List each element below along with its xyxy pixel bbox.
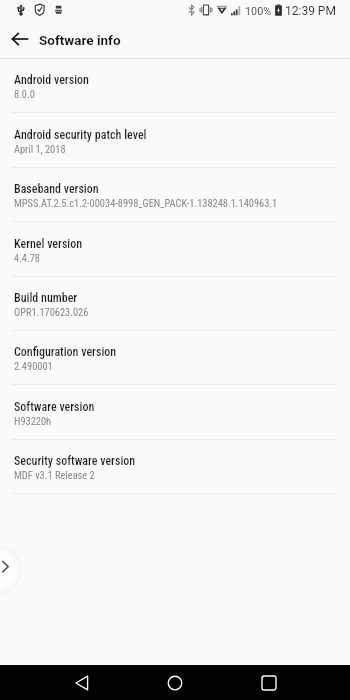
staticText: MPSS.AT.2.5.c1.2-00034-8998_GEN_PACK-1.1… [14, 197, 278, 209]
button[interactable]: Open edge panel [0, 544, 28, 596]
staticText: Android security patch level [14, 128, 147, 142]
button[interactable]: Navigate up [3, 22, 37, 56]
staticText: Configuration version [14, 345, 117, 359]
button[interactable]: Build number [0, 276, 350, 330]
staticText: 12:39 PM [285, 4, 336, 18]
button[interactable]: Back [58, 665, 105, 700]
staticText: April 1, 2018 [14, 143, 66, 155]
button[interactable]: Security software version [0, 439, 350, 493]
staticText: OPR1.170623.026 [14, 306, 89, 318]
staticText: 8.0.0 [14, 88, 35, 100]
staticText: Build number [14, 291, 78, 305]
staticText: Android version [14, 73, 89, 87]
staticText: Baseband version [14, 182, 99, 196]
staticText: H93220h [14, 415, 52, 427]
staticText: Kernel version [14, 237, 83, 251]
button[interactable]: Home [151, 665, 198, 700]
staticText: 100% [245, 5, 272, 18]
button[interactable]: Recent apps [245, 665, 292, 700]
button[interactable]: Software version [0, 385, 350, 439]
staticText: Software info [39, 32, 121, 48]
staticText: 4.4.78 [14, 252, 40, 264]
staticText: 2.490001 [14, 360, 53, 372]
button[interactable]: Configuration version [0, 330, 350, 384]
button[interactable]: Android security patch level [0, 113, 350, 167]
staticText: Software version [14, 400, 95, 414]
staticText: MDF v3.1 Release 2 [14, 469, 95, 481]
button[interactable]: Kernel version [0, 222, 350, 276]
button[interactable]: Baseband version [0, 167, 350, 221]
staticText: Security software version [14, 454, 136, 468]
button[interactable]: Android version [0, 58, 350, 112]
